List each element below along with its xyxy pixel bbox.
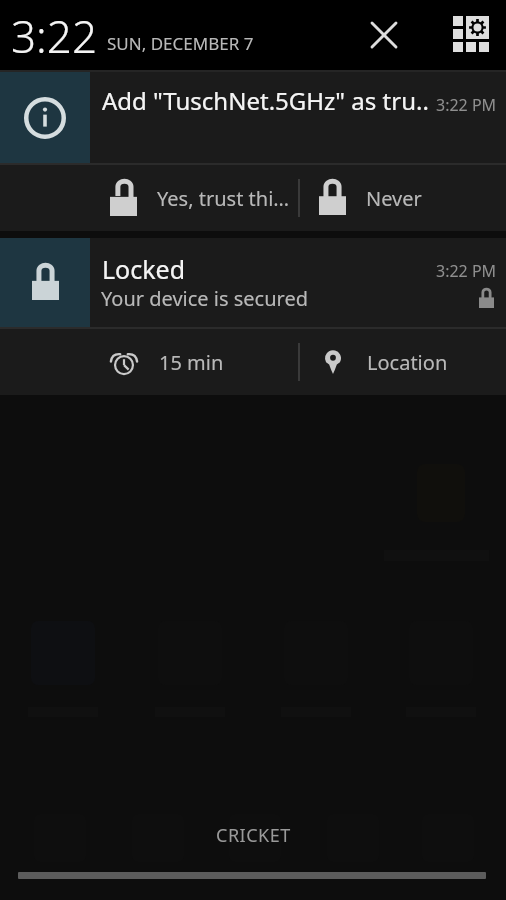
staticText: Location [367, 349, 448, 376]
button[interactable]: Add "TuschNet.5GHz" as tru.. [0, 72, 506, 163]
staticText: 3:22 PM [436, 260, 497, 282]
staticText: Never [366, 185, 422, 212]
staticText: 3:22 [11, 6, 98, 66]
staticText: SUN, DECEMBER 7 [107, 32, 254, 55]
button[interactable]: Quick settings [418, 0, 506, 70]
staticText: CRICKET [216, 823, 291, 848]
staticText: Your device is secured [101, 285, 309, 312]
staticText: Yes, trust thi… [157, 185, 290, 212]
staticText: Locked [102, 252, 186, 286]
staticText: 3:22 PM [436, 94, 497, 116]
button[interactable]: Locked [0, 238, 506, 327]
button[interactable]: 15 min [0, 329, 298, 395]
button[interactable]: Never [298, 165, 506, 231]
button[interactable]: Location [298, 329, 506, 395]
button[interactable]: Yes, trust thi… [0, 165, 298, 231]
staticText: 15 min [159, 349, 224, 376]
button[interactable]: Clear all notifications [349, 0, 418, 70]
staticText: Add "TuschNet.5GHz" as tru.. [102, 84, 429, 117]
